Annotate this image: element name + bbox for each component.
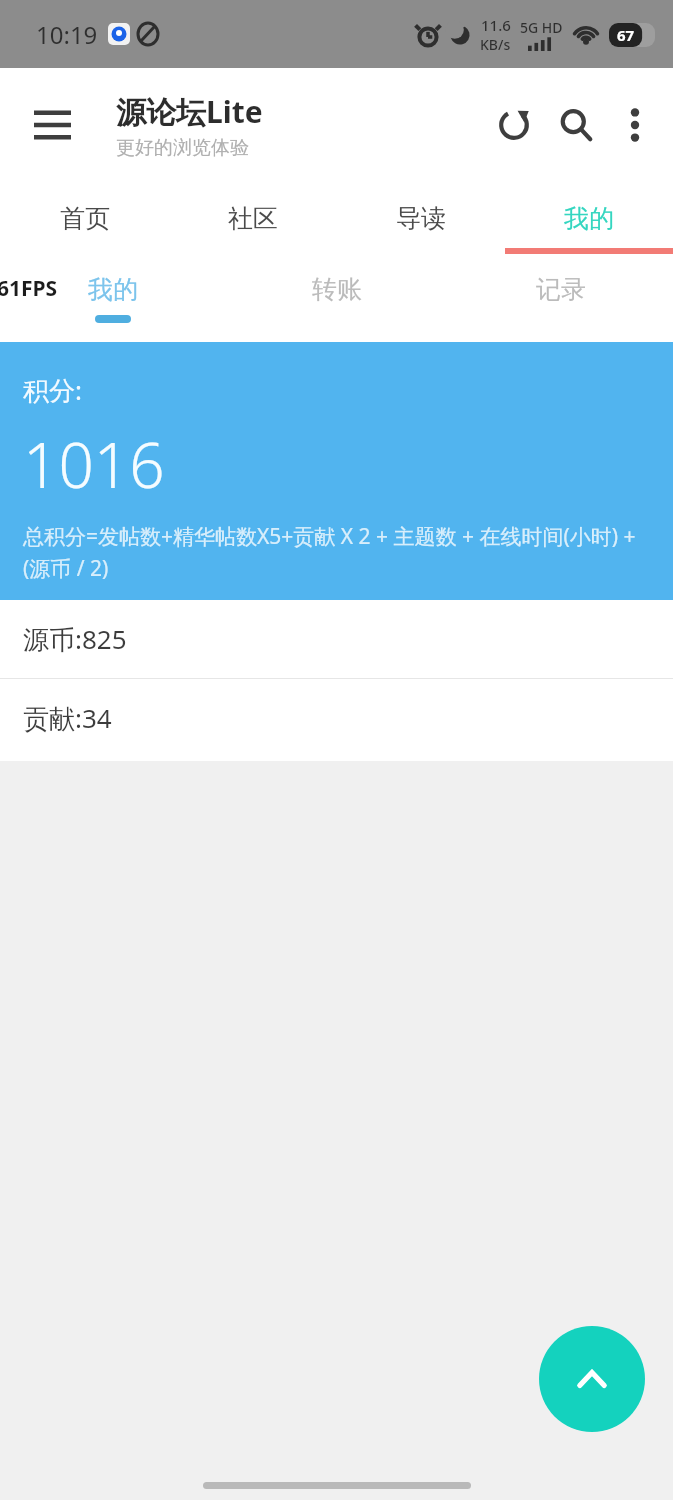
staticText: 5G HD bbox=[520, 18, 563, 37]
button[interactable]: Refresh bbox=[483, 94, 545, 156]
staticText: 67 bbox=[617, 25, 635, 45]
staticText: 我的 bbox=[88, 274, 138, 305]
staticText: 记录 bbox=[536, 274, 586, 305]
staticText: 贡献:34 bbox=[23, 700, 112, 736]
button[interactable]: 积分: bbox=[0, 342, 673, 600]
button[interactable]: More options bbox=[607, 97, 663, 153]
staticText: 积分: bbox=[23, 372, 82, 408]
staticText: 转账 bbox=[312, 274, 362, 305]
button[interactable]: 贡献:34 bbox=[0, 679, 673, 757]
button[interactable]: Scroll to top bbox=[539, 1326, 645, 1432]
button[interactable]: 首页 bbox=[0, 182, 169, 254]
staticText: 社区 bbox=[228, 203, 278, 234]
staticText: 61FPS bbox=[0, 274, 58, 303]
button[interactable]: 我的 bbox=[0, 254, 225, 342]
button[interactable]: Menu bbox=[14, 87, 90, 163]
staticText: 1016 bbox=[23, 422, 165, 506]
button[interactable]: 记录 bbox=[449, 254, 673, 342]
staticText: 我的 bbox=[564, 203, 614, 234]
staticText: 首页 bbox=[60, 203, 110, 234]
staticText: 源币:825 bbox=[23, 621, 127, 657]
staticText: 更好的浏览体验 bbox=[116, 136, 249, 160]
staticText: 源论坛Lite bbox=[116, 91, 263, 132]
staticText: 导读 bbox=[396, 203, 446, 234]
button[interactable]: Search bbox=[545, 94, 607, 156]
button[interactable]: 社区 bbox=[169, 182, 337, 254]
button[interactable]: 我的 bbox=[505, 182, 673, 254]
staticText: 10:19 bbox=[36, 18, 98, 51]
staticText: 11.6 bbox=[481, 15, 511, 35]
button[interactable]: 源币:825 bbox=[0, 600, 673, 678]
staticText: KB/s bbox=[480, 35, 511, 54]
button[interactable]: 转账 bbox=[225, 254, 449, 342]
staticText: 总积分=发帖数+精华帖数X5+贡献 X 2 + 主题数 + 在线时间(小时) +… bbox=[23, 522, 653, 583]
button[interactable]: 导读 bbox=[337, 182, 505, 254]
